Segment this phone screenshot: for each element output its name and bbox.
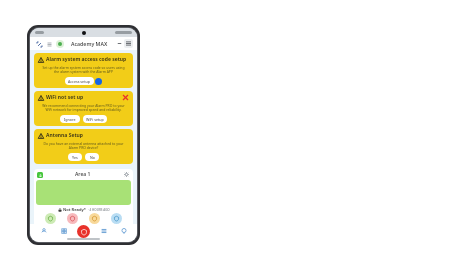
staticText: We recommend connecting your Alarm PRO t… bbox=[41, 103, 126, 112]
staticText: Academy MAX bbox=[71, 40, 108, 47]
staticText: Antenna Setup bbox=[46, 132, 129, 139]
staticText: WiFi setup bbox=[86, 117, 104, 122]
staticText: Yes bbox=[72, 155, 78, 160]
button[interactable]: Scan bbox=[34, 39, 44, 49]
button[interactable]: Collapse bbox=[115, 39, 124, 48]
button[interactable]: WiFi not set up bbox=[34, 91, 133, 126]
button[interactable]: Access setup bbox=[65, 77, 94, 85]
button[interactable]: Filter bbox=[44, 39, 54, 49]
button[interactable]: Ignore bbox=[60, 115, 80, 123]
button[interactable]: Devices bbox=[57, 224, 70, 237]
button[interactable]: No bbox=[85, 153, 99, 161]
staticText: No bbox=[90, 155, 95, 160]
staticText: Alarm system access code setup bbox=[46, 56, 129, 63]
button[interactable]: Arm Away bbox=[67, 213, 78, 224]
button[interactable]: Notifications bbox=[117, 224, 130, 237]
button[interactable]: Dismiss bbox=[122, 94, 129, 101]
button[interactable]: Arm system bbox=[77, 225, 90, 238]
staticText: Area 1 bbox=[75, 171, 91, 178]
staticText: Ignore bbox=[64, 117, 76, 122]
button[interactable]: System OK bbox=[56, 40, 64, 48]
button[interactable]: Profile bbox=[37, 224, 50, 237]
button[interactable]: More options bbox=[124, 39, 133, 48]
button[interactable]: Yes bbox=[68, 153, 82, 161]
button[interactable]: Area settings bbox=[123, 171, 130, 178]
button[interactable]: WiFi setup bbox=[83, 115, 107, 123]
button[interactable]: Arm Night bbox=[111, 213, 122, 224]
button[interactable]: Disarm bbox=[45, 213, 56, 224]
staticText: · 4 HOURS AGO bbox=[88, 208, 110, 212]
button[interactable]: Arm Stay bbox=[89, 213, 100, 224]
staticText: Set up the alarm system access code so u… bbox=[41, 65, 126, 74]
button[interactable]: Area armed state bbox=[37, 172, 43, 178]
staticText: Do you have an external antenna attached… bbox=[41, 141, 126, 150]
button[interactable]: Activity bbox=[97, 224, 110, 237]
staticText: Access setup bbox=[68, 79, 91, 84]
button[interactable]: Antenna Setup bbox=[34, 129, 133, 164]
staticText: WiFi not set up bbox=[46, 94, 122, 101]
button[interactable]: Alarm system access code setup bbox=[34, 53, 133, 88]
staticText: Not Ready* bbox=[63, 207, 86, 212]
